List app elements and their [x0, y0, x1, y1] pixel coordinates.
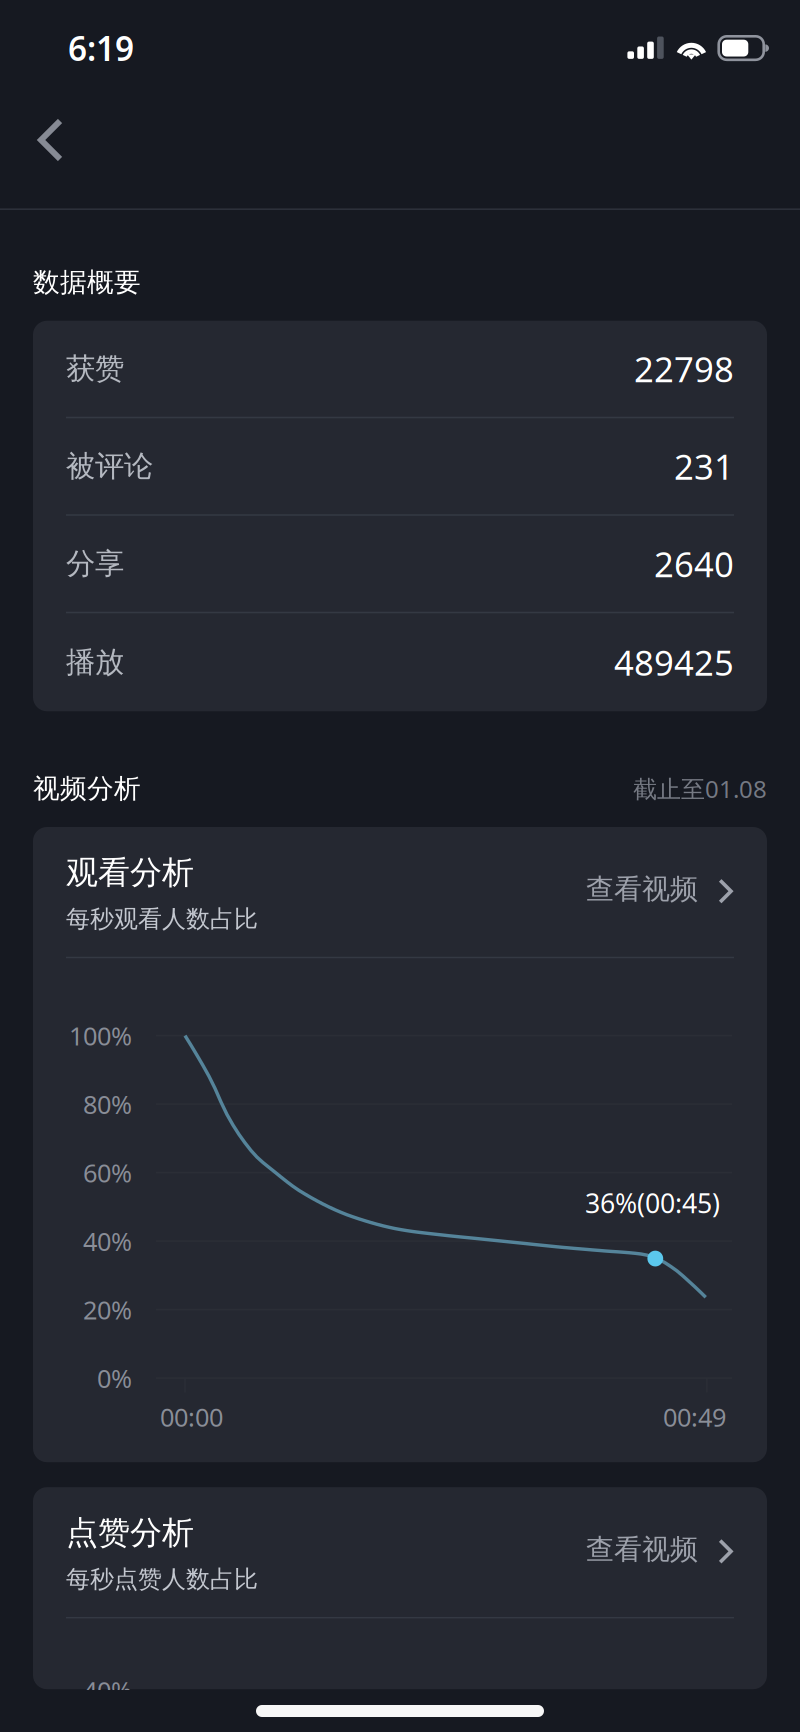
- staticText: 6:19: [68, 26, 134, 70]
- staticText: 点赞分析: [66, 1513, 194, 1552]
- staticText: 每秒观看人数占比: [66, 904, 258, 934]
- staticText: 231: [674, 443, 734, 489]
- staticText: 40%: [83, 1224, 132, 1258]
- staticText: 00:49: [663, 1400, 726, 1434]
- staticText: 分享: [66, 546, 124, 582]
- staticText: 视频分析: [33, 772, 141, 805]
- staticText: 2640: [654, 541, 734, 587]
- staticText: 0%: [97, 1361, 132, 1395]
- staticText: 36%(00:45): [585, 1185, 720, 1220]
- staticText: 100%: [69, 1019, 132, 1052]
- staticText: 22798: [634, 346, 734, 392]
- staticText: 截止至01.08: [633, 773, 767, 805]
- staticText: 20%: [83, 1293, 132, 1326]
- staticText: 80%: [83, 1087, 132, 1121]
- staticText: 观看分析: [66, 853, 194, 892]
- staticText: 00:00: [160, 1400, 223, 1434]
- staticText: 489425: [614, 639, 734, 685]
- staticText: 每秒点赞人数占比: [66, 1564, 258, 1594]
- staticText: 获赞: [66, 351, 124, 387]
- button[interactable]: 查看视频: [586, 1513, 734, 1567]
- staticText: 60%: [83, 1156, 132, 1189]
- button[interactable]: Back: [0, 96, 90, 186]
- staticText: 查看视频: [586, 872, 698, 906]
- staticText: 数据概要: [33, 266, 141, 299]
- staticText: 查看视频: [586, 1532, 698, 1567]
- staticText: 40%: [83, 1674, 132, 1707]
- staticText: 播放: [66, 644, 124, 680]
- staticText: 被评论: [66, 448, 153, 484]
- button[interactable]: 查看视频: [586, 853, 734, 906]
